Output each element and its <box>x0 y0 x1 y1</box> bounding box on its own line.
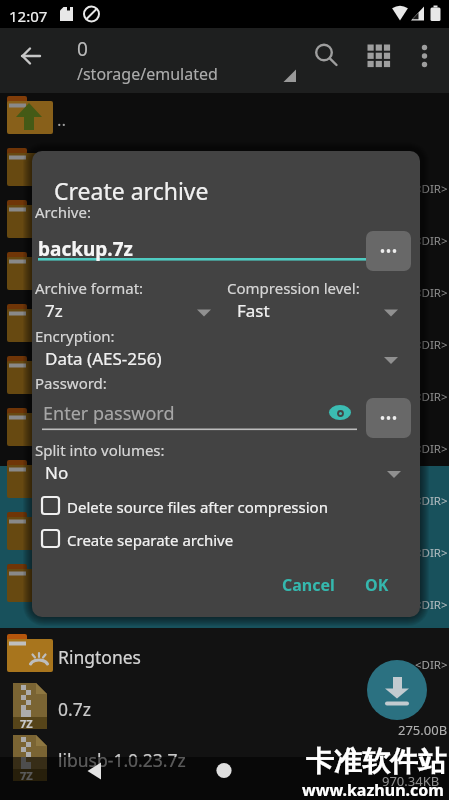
staticText: OK <box>365 574 389 596</box>
staticText: Fast <box>237 299 270 322</box>
button[interactable] <box>0 628 449 681</box>
staticText: 0 <box>77 36 88 62</box>
button[interactable] <box>408 40 442 74</box>
button[interactable]: OK <box>346 565 408 605</box>
staticText: <DIR> <box>415 233 448 249</box>
button[interactable] <box>38 341 402 371</box>
button[interactable]: Cancel <box>270 565 346 605</box>
staticText: Password: <box>35 373 107 393</box>
staticText: <DIR> <box>415 597 448 613</box>
button[interactable] <box>308 40 342 74</box>
staticText: <DIR> <box>415 493 448 509</box>
staticText: Create separate archive <box>67 530 234 550</box>
button[interactable] <box>0 734 449 758</box>
staticText: <DIR> <box>415 285 448 301</box>
staticText: 275.00B <box>398 721 448 739</box>
staticText: <DIR> <box>415 389 448 405</box>
button[interactable] <box>38 491 378 519</box>
staticText: Delete source files after compression <box>67 497 328 517</box>
staticText: Archive format: <box>35 278 144 298</box>
button[interactable] <box>14 40 48 74</box>
staticText: Compression level: <box>227 278 360 298</box>
staticText: <DIR> <box>415 337 448 353</box>
staticText: .. <box>57 108 67 131</box>
button[interactable] <box>362 40 396 74</box>
button[interactable] <box>204 755 244 795</box>
staticText: No <box>45 461 69 484</box>
staticText: Cancel <box>282 574 335 596</box>
staticText: /storage/emulated <box>77 63 218 85</box>
button[interactable] <box>38 396 358 430</box>
button[interactable] <box>0 681 449 734</box>
button[interactable] <box>366 398 411 438</box>
button[interactable] <box>367 660 427 720</box>
button[interactable] <box>38 455 402 485</box>
button[interactable] <box>230 293 402 323</box>
button[interactable] <box>38 524 378 552</box>
staticText: <DIR> <box>415 441 448 457</box>
staticText: 7Z <box>20 716 33 731</box>
staticText: Ringtones <box>58 645 141 669</box>
staticText: 7Z <box>20 768 33 783</box>
button[interactable] <box>75 755 115 795</box>
staticText: 0.7z <box>58 697 91 721</box>
staticText: Create archive <box>54 175 209 206</box>
button[interactable] <box>38 293 218 323</box>
staticText: 卡准软件站 <box>306 744 446 779</box>
staticText: <DIR> <box>415 657 448 673</box>
staticText: <DIR> <box>415 545 448 561</box>
staticText: Encryption: <box>35 326 115 346</box>
staticText: <DIR> <box>415 181 448 197</box>
staticText: 7z <box>45 299 63 322</box>
staticText: Data (AES-256) <box>45 347 162 370</box>
staticText: libusb-1.0.23.7z <box>58 748 186 772</box>
staticText: Enter password <box>43 401 175 426</box>
staticText: backup.7z <box>38 236 133 262</box>
staticText: www.kazhun.com <box>302 779 444 800</box>
staticText: 12:07 <box>9 6 48 26</box>
button[interactable] <box>38 231 374 263</box>
staticText: Split into volumes: <box>35 440 165 460</box>
staticText: Archive: <box>35 202 91 222</box>
staticText: 970.34KB <box>382 772 440 790</box>
button[interactable] <box>366 231 411 271</box>
